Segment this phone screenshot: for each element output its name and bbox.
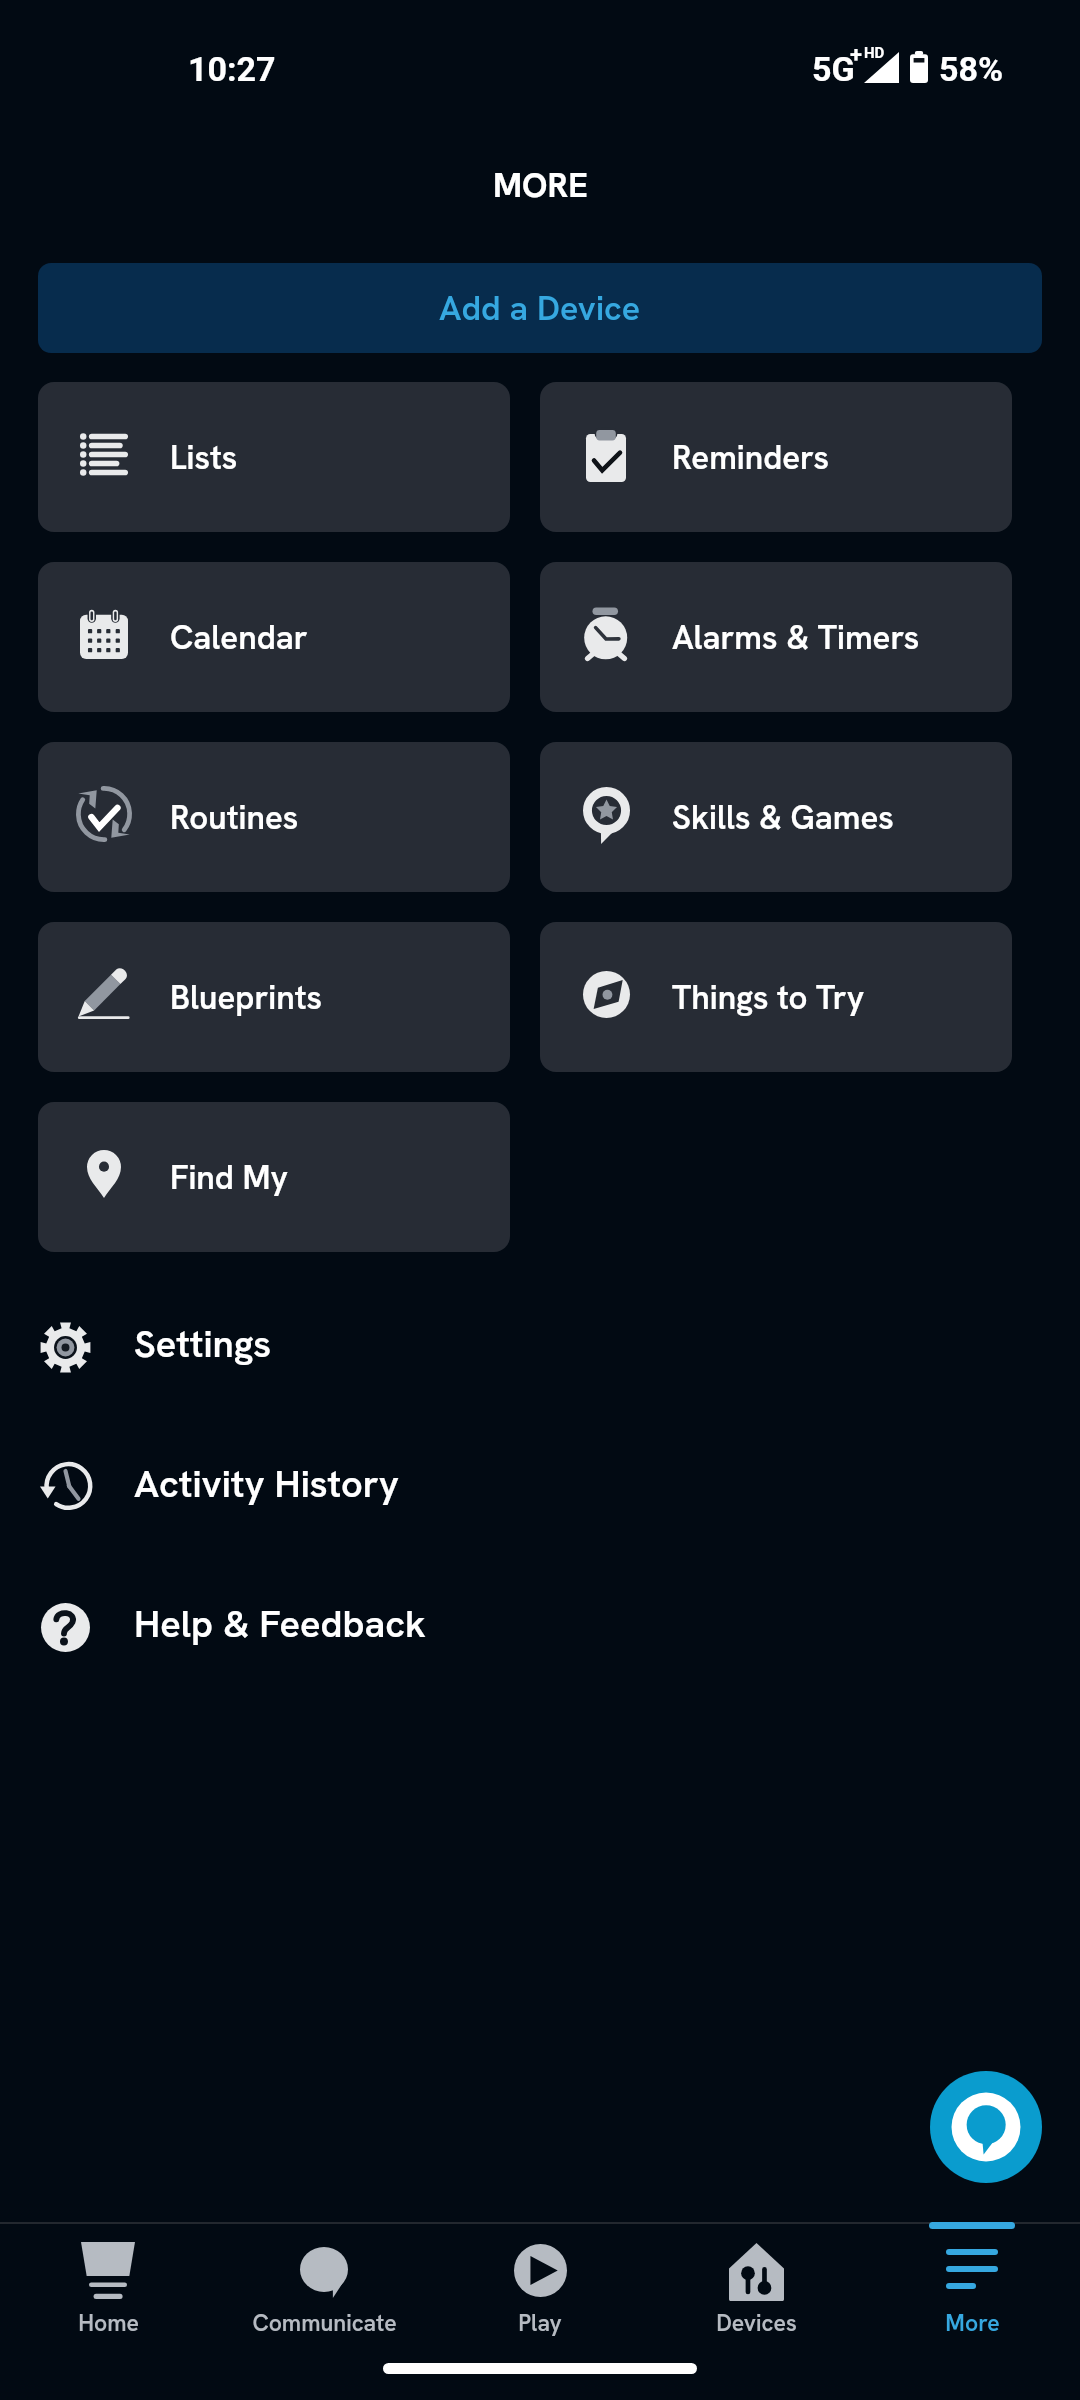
button[interactable]: More xyxy=(864,2224,1080,2344)
staticText: Alarms & Timers xyxy=(672,616,920,659)
staticText: Routines xyxy=(170,796,299,839)
staticText: Help & Feedback xyxy=(134,1599,426,1649)
button[interactable]: Alarms & Timers xyxy=(540,562,1012,712)
button[interactable]: Things to Try xyxy=(540,922,1012,1072)
staticText: + xyxy=(850,42,862,68)
button[interactable]: Add a Device xyxy=(38,263,1042,353)
staticText: MORE xyxy=(493,163,588,207)
staticText: Reminders xyxy=(672,436,830,479)
button[interactable]: Skills & Games xyxy=(540,742,1012,892)
button[interactable]: Play xyxy=(432,2224,648,2344)
button[interactable]: Devices xyxy=(648,2224,864,2344)
button[interactable]: Activity History xyxy=(0,1417,1080,1557)
button[interactable]: Home xyxy=(0,2224,216,2344)
button[interactable]: Find My xyxy=(38,1102,510,1252)
staticText: Home xyxy=(78,2308,139,2338)
staticText: Skills & Games xyxy=(672,796,894,839)
staticText: Play xyxy=(518,2308,562,2338)
staticText: Blueprints xyxy=(170,976,323,1019)
staticText: 5G xyxy=(812,49,855,89)
staticText: 58% xyxy=(939,49,1004,89)
staticText: Things to Try xyxy=(672,976,865,1019)
button[interactable]: Routines xyxy=(38,742,510,892)
staticText: HD xyxy=(864,44,885,62)
staticText: Settings xyxy=(134,1319,272,1369)
staticText: Devices xyxy=(716,2308,797,2338)
button[interactable]: Settings xyxy=(0,1277,1080,1417)
staticText: More xyxy=(945,2308,1000,2338)
button[interactable]: Communicate xyxy=(216,2224,432,2344)
button[interactable]: Reminders xyxy=(540,382,1012,532)
staticText: Activity History xyxy=(134,1459,399,1509)
staticText: Add a Device xyxy=(439,286,641,330)
button[interactable]: Blueprints xyxy=(38,922,510,1072)
button[interactable]: Calendar xyxy=(38,562,510,712)
button[interactable]: Lists xyxy=(38,382,510,532)
staticText: Find My xyxy=(170,1156,289,1199)
staticText: Lists xyxy=(170,436,238,479)
staticText: Calendar xyxy=(170,616,308,659)
button[interactable]: Talk to Alexa xyxy=(930,2071,1042,2183)
staticText: 10:27 xyxy=(188,49,276,89)
button[interactable]: Help & Feedback xyxy=(0,1557,1080,1697)
staticText: Communicate xyxy=(252,2308,397,2338)
